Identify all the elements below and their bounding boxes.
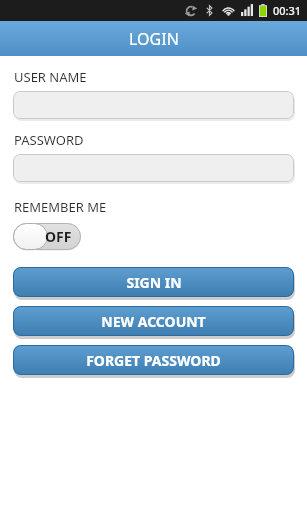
staticText: REMEMBER ME xyxy=(14,198,107,216)
button[interactable]: OFF xyxy=(13,223,81,250)
staticText: PASSWORD xyxy=(14,131,84,149)
staticText: FORGET PASSWORD xyxy=(86,351,221,370)
button[interactable]: SIGN IN xyxy=(13,267,294,297)
staticText: NEW ACCOUNT xyxy=(101,312,206,331)
staticText: 00:31 xyxy=(273,3,302,18)
button[interactable]: NEW ACCOUNT xyxy=(13,306,294,336)
staticText: OFF xyxy=(45,227,72,246)
staticText: SIGN IN xyxy=(126,273,182,292)
button[interactable] xyxy=(13,91,294,119)
button[interactable] xyxy=(13,154,294,182)
staticText: LOGIN xyxy=(129,28,179,50)
staticText: USER NAME xyxy=(14,68,87,86)
button[interactable]: FORGET PASSWORD xyxy=(13,345,294,375)
